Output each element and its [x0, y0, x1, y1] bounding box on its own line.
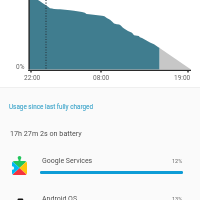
staticText: 12%	[172, 158, 183, 164]
staticText: 17h 27m 2s on battery	[10, 129, 82, 137]
staticText: Google Services	[42, 157, 93, 165]
staticText: Android OS	[42, 195, 78, 200]
button[interactable]: Usage since last fully charged	[9, 103, 94, 110]
staticText: 22:00	[24, 74, 41, 82]
staticText: 0%	[16, 63, 25, 71]
staticText: 13%	[172, 196, 183, 200]
button[interactable]: Android OS	[0, 189, 200, 200]
staticText: 08:00	[93, 74, 110, 82]
button[interactable]: Google Services	[0, 151, 200, 187]
staticText: 19:00	[174, 74, 191, 82]
staticText: Usage since last fully charged	[9, 103, 94, 110]
